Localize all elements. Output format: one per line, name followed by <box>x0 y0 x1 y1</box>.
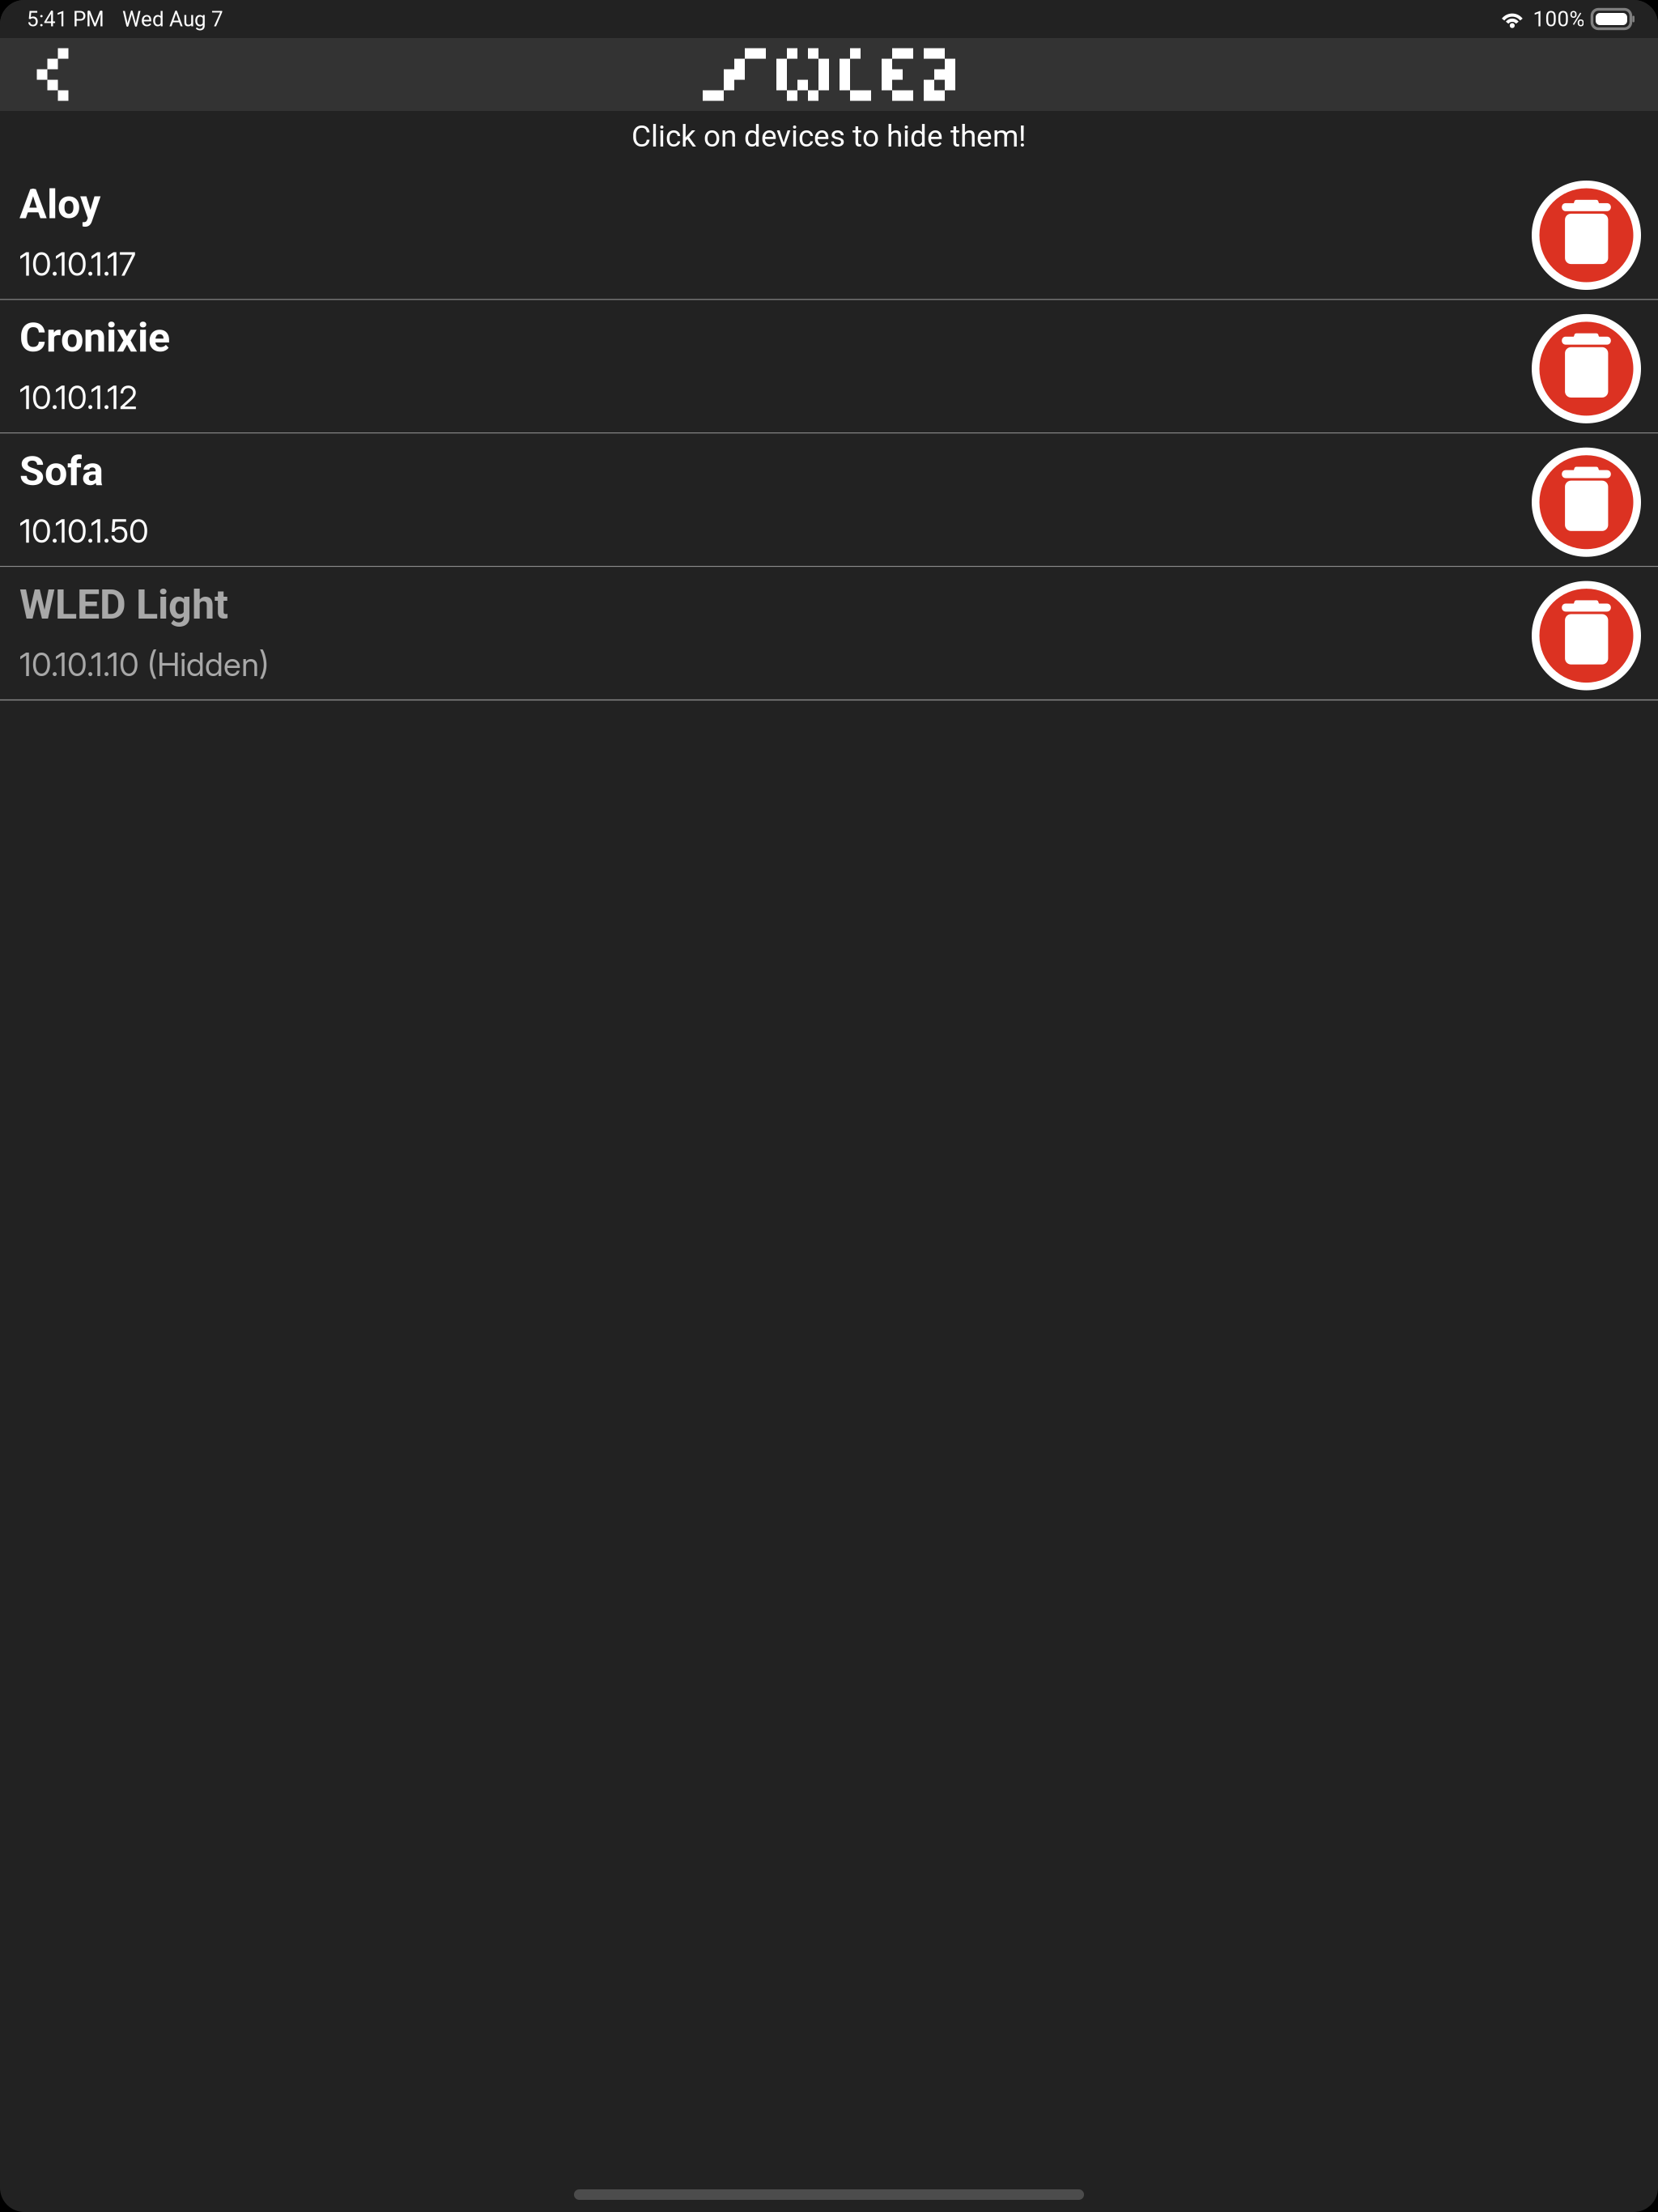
button[interactable]: Aloy <box>0 167 1658 299</box>
button[interactable]: Sofa <box>0 434 1658 566</box>
staticText: WLED Light <box>19 581 228 629</box>
button[interactable]: Back <box>0 38 105 111</box>
button[interactable]: Remove device <box>1532 579 1641 688</box>
button[interactable]: Remove device <box>1532 445 1641 554</box>
button[interactable]: WLED Light <box>0 567 1658 699</box>
staticText: Wed Aug 7 <box>122 7 223 31</box>
staticText: 10.10.1.12 <box>19 378 138 417</box>
staticText: Click on devices to hide them! <box>631 119 1027 154</box>
button[interactable]: Remove device <box>1532 312 1641 421</box>
staticText: Aloy <box>19 180 100 228</box>
button[interactable]: Remove device <box>1532 178 1641 287</box>
staticText: 10.10.1.50 <box>19 511 149 550</box>
staticText: 100% <box>1533 7 1585 31</box>
staticText: 5:41 PM <box>27 7 104 31</box>
staticText: 10.10.1.17 <box>19 244 136 283</box>
button[interactable]: Cronixie <box>0 300 1658 432</box>
staticText: Sofa <box>19 447 104 495</box>
staticText: 10.10.1.10 (Hidden) <box>19 645 269 684</box>
staticText: Cronixie <box>19 314 170 362</box>
